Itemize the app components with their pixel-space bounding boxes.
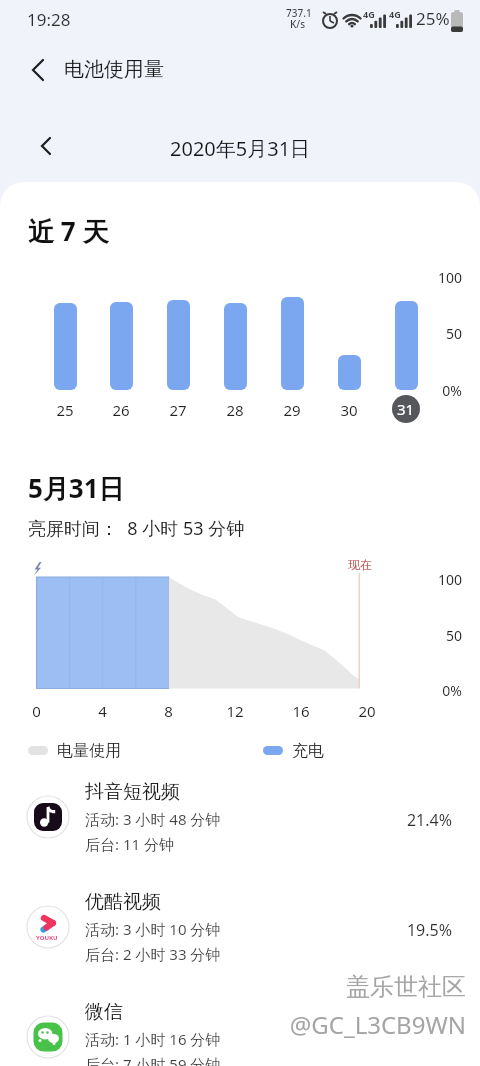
staticText: 31 <box>397 399 415 419</box>
button[interactable] <box>281 297 304 390</box>
button[interactable] <box>338 355 361 390</box>
staticText: 现在 <box>348 557 372 572</box>
staticText: 后台: 2 小时 33 分钟 <box>85 944 221 964</box>
staticText: 29 <box>283 400 301 420</box>
staticText: 27 <box>169 400 187 420</box>
staticText: 26 <box>112 400 130 420</box>
button[interactable] <box>0 992 480 1066</box>
button[interactable] <box>224 303 247 390</box>
button[interactable] <box>167 300 190 390</box>
staticText: 4G <box>389 8 401 20</box>
staticText: 50 <box>445 324 462 343</box>
staticText: 0 <box>32 701 41 721</box>
staticText: 后台: 11 分钟 <box>85 834 174 854</box>
staticText: 亮屏时间： 8 小时 53 分钟 <box>28 516 245 541</box>
staticText: 19:28 <box>27 8 71 31</box>
staticText: 5月31日 <box>28 470 125 506</box>
staticText: 12 <box>226 701 244 721</box>
staticText: 20 <box>358 701 376 721</box>
staticText: 21.4% <box>406 809 452 831</box>
button[interactable] <box>395 301 418 390</box>
staticText: 微信 <box>85 1000 123 1024</box>
button[interactable] <box>26 126 66 166</box>
staticText: 活动: 3 小时 48 分钟 <box>85 809 221 829</box>
staticText: 25% <box>416 7 450 30</box>
staticText: 50 <box>445 626 462 645</box>
staticText: 4G <box>363 8 375 20</box>
staticText: 28 <box>226 400 244 420</box>
staticText: 100 <box>437 570 462 589</box>
staticText: 后台: 7 小时 59 分钟 <box>85 1054 221 1066</box>
button[interactable]: 31 <box>392 395 420 423</box>
staticText: K/s <box>290 17 306 31</box>
button[interactable] <box>0 882 480 990</box>
staticText: 25 <box>56 400 74 420</box>
staticText: 抖音短视频 <box>85 780 180 804</box>
staticText: 4 <box>98 701 107 721</box>
button[interactable] <box>16 48 60 92</box>
staticText: 近 7 天 <box>28 213 109 249</box>
button[interactable] <box>54 303 77 390</box>
staticText: 16 <box>292 701 310 721</box>
staticText: 电池使用量 <box>64 57 164 82</box>
staticText: 0% <box>442 681 462 700</box>
staticText: 100 <box>437 268 462 287</box>
staticText: 30 <box>340 400 358 420</box>
staticText: 2020年5月31日 <box>170 135 311 162</box>
staticText: 电量使用 <box>57 741 121 761</box>
staticText: 19.5% <box>406 919 452 941</box>
button[interactable] <box>110 302 133 390</box>
staticText: 充电 <box>292 741 324 761</box>
staticText: 活动: 3 小时 10 分钟 <box>85 919 221 939</box>
staticText: 0% <box>442 381 462 400</box>
staticText: 活动: 1 小时 16 分钟 <box>85 1029 221 1049</box>
staticText: YOUKU <box>36 934 58 942</box>
staticText: @GC_L3CB9WN <box>289 1008 466 1041</box>
staticText: 8 <box>164 701 173 721</box>
staticText: 盖乐世社区 <box>346 972 466 1002</box>
staticText: 优酷视频 <box>85 890 161 914</box>
button[interactable] <box>0 772 480 880</box>
staticText: 737.1 <box>286 6 312 20</box>
